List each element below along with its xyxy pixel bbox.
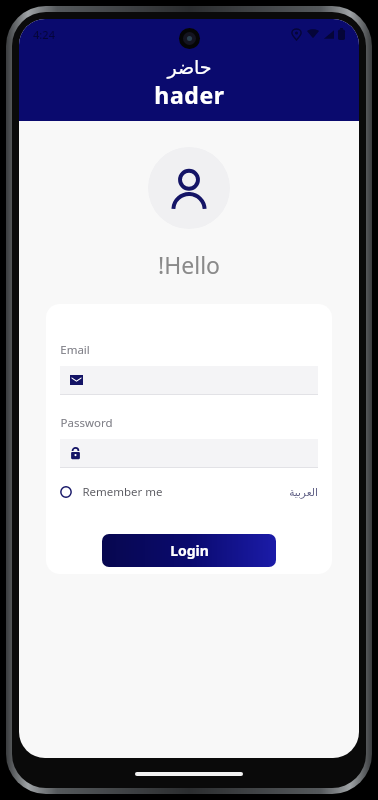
button[interactable]: العربية bbox=[289, 486, 318, 498]
other: Profile avatar bbox=[148, 147, 230, 229]
staticText: !Hello bbox=[158, 249, 220, 280]
staticText: Email bbox=[60, 342, 90, 358]
staticText: Remember me bbox=[82, 484, 163, 500]
staticText: hader bbox=[154, 79, 225, 110]
button[interactable]: Email bbox=[60, 366, 318, 395]
button[interactable]: Login bbox=[102, 534, 276, 567]
button[interactable]: Password bbox=[60, 439, 318, 468]
staticText: العربية bbox=[289, 486, 318, 498]
button[interactable]: Remember me bbox=[60, 484, 163, 500]
staticText: 4:24 bbox=[33, 27, 55, 42]
other: Email bbox=[70, 375, 83, 385]
staticText: Password bbox=[60, 415, 113, 431]
staticText: حاضر bbox=[167, 56, 212, 78]
other: Password bbox=[70, 447, 81, 460]
staticText: Login bbox=[170, 541, 209, 560]
